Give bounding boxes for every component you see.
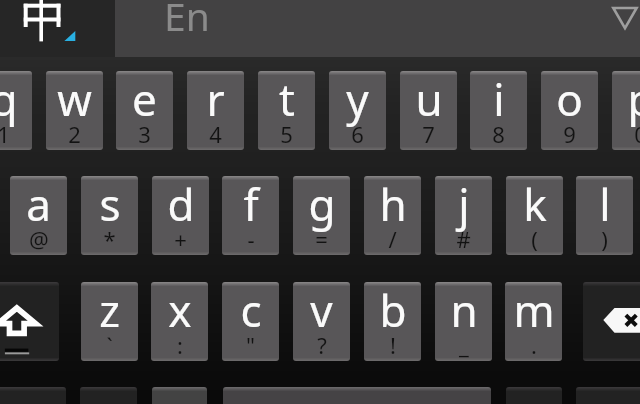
staticText: @ bbox=[29, 224, 49, 254]
staticText: ! bbox=[390, 330, 396, 360]
staticText: " bbox=[246, 330, 255, 360]
staticText: a bbox=[26, 176, 51, 234]
staticText: y bbox=[346, 71, 369, 129]
staticText: * bbox=[103, 224, 116, 254]
button[interactable]: y bbox=[329, 71, 386, 150]
staticText: 1 bbox=[0, 119, 10, 149]
staticText: e bbox=[132, 71, 157, 129]
button[interactable]: z bbox=[81, 282, 138, 361]
staticText: n bbox=[450, 282, 478, 340]
button[interactable]: Shift bbox=[0, 282, 59, 361]
button[interactable]: p bbox=[612, 71, 640, 150]
button[interactable]: g bbox=[293, 176, 350, 255]
staticText: x bbox=[168, 282, 192, 340]
staticText: i bbox=[493, 71, 505, 129]
button[interactable]: h bbox=[364, 176, 421, 255]
button[interactable]: Backspace bbox=[583, 282, 640, 361]
button[interactable]: d bbox=[152, 176, 209, 255]
staticText: 2 bbox=[68, 119, 81, 149]
staticText: v bbox=[310, 282, 333, 340]
button[interactable]: Switch input language bbox=[0, 0, 115, 57]
button[interactable]: m bbox=[505, 282, 562, 361]
staticText: f bbox=[243, 176, 259, 234]
button[interactable]: i bbox=[470, 71, 527, 150]
staticText: z bbox=[99, 282, 120, 340]
staticText: 8 bbox=[492, 119, 505, 149]
staticText: ? bbox=[317, 330, 327, 360]
button[interactable]: Comma bbox=[80, 387, 137, 404]
button[interactable]: x bbox=[151, 282, 208, 361]
staticText: 9 bbox=[563, 119, 576, 149]
staticText: ( bbox=[531, 224, 538, 254]
button[interactable]: Period bbox=[506, 387, 562, 404]
button[interactable]: Enter bbox=[576, 387, 640, 404]
button[interactable]: a bbox=[10, 176, 67, 255]
button[interactable]: e bbox=[116, 71, 173, 150]
button[interactable]: l bbox=[576, 176, 633, 255]
staticText: s bbox=[99, 176, 121, 234]
staticText: # bbox=[456, 224, 471, 254]
staticText: + bbox=[174, 224, 187, 254]
staticText: - bbox=[247, 224, 255, 254]
button[interactable]: f bbox=[222, 176, 279, 255]
staticText: p bbox=[627, 71, 640, 129]
button[interactable]: Space bbox=[223, 387, 491, 404]
button[interactable]: Change language bbox=[152, 387, 207, 404]
staticText: m bbox=[513, 282, 555, 340]
button[interactable]: t bbox=[258, 71, 315, 150]
button[interactable]: r bbox=[187, 71, 244, 150]
staticText: ) bbox=[601, 224, 608, 254]
staticText: : bbox=[177, 330, 183, 360]
staticText: _ bbox=[459, 330, 469, 360]
staticText: 0 bbox=[634, 119, 640, 149]
button[interactable]: c bbox=[222, 282, 279, 361]
button[interactable]: o bbox=[541, 71, 598, 150]
staticText: 6 bbox=[351, 119, 364, 149]
button[interactable]: Hide keyboard bbox=[600, 0, 640, 40]
staticText: k bbox=[523, 176, 547, 234]
staticText: l bbox=[599, 176, 611, 234]
button[interactable]: q bbox=[0, 71, 32, 150]
staticText: g bbox=[308, 176, 336, 234]
staticText: 5 bbox=[280, 119, 293, 149]
staticText: 7 bbox=[422, 119, 435, 149]
button[interactable]: n bbox=[435, 282, 492, 361]
staticText: w bbox=[57, 71, 92, 129]
staticText: t bbox=[279, 71, 295, 129]
staticText: 4 bbox=[209, 119, 222, 149]
staticText: b bbox=[379, 282, 407, 340]
staticText: d bbox=[167, 176, 195, 234]
button[interactable]: Symbols bbox=[0, 387, 66, 404]
button[interactable]: w bbox=[46, 71, 103, 150]
button[interactable]: s bbox=[81, 176, 138, 255]
staticText: = bbox=[315, 224, 328, 254]
staticText: / bbox=[388, 224, 397, 254]
staticText: r bbox=[206, 71, 225, 129]
staticText: h bbox=[379, 176, 407, 234]
button[interactable]: b bbox=[364, 282, 421, 361]
staticText: . bbox=[531, 330, 537, 360]
button[interactable]: k bbox=[506, 176, 563, 255]
staticText: En bbox=[164, 0, 210, 42]
button[interactable]: j bbox=[435, 176, 492, 255]
staticText: u bbox=[415, 71, 443, 129]
staticText: j bbox=[458, 176, 470, 234]
staticText: q bbox=[0, 71, 18, 129]
button[interactable]: v bbox=[293, 282, 350, 361]
staticText: ` bbox=[106, 330, 113, 360]
staticText: c bbox=[240, 282, 262, 340]
button[interactable]: u bbox=[400, 71, 457, 150]
staticText: 3 bbox=[138, 119, 151, 149]
staticText: o bbox=[556, 71, 583, 129]
